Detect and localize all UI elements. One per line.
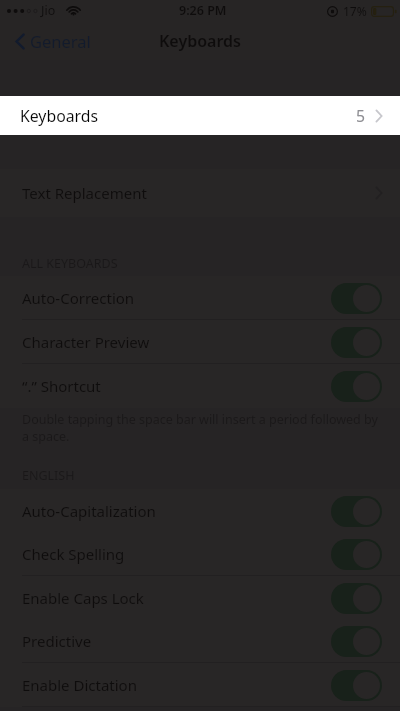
button[interactable]: Predictive <box>0 619 400 663</box>
staticText: Character Preview <box>22 332 150 352</box>
button[interactable]: Toggle <box>331 626 382 657</box>
button[interactable]: Auto-Correction <box>0 276 400 320</box>
button[interactable]: Toggle <box>331 670 382 701</box>
staticText: Auto-Capitalization <box>22 501 156 521</box>
staticText: Enable Caps Lock <box>22 588 144 608</box>
staticText: 17% <box>343 3 367 19</box>
staticText: “.” Shortcut <box>22 376 101 396</box>
staticText: General <box>30 30 91 52</box>
button[interactable]: General <box>13 25 93 57</box>
staticText: Auto-Correction <box>22 288 135 308</box>
button[interactable]: Character Preview <box>0 320 400 364</box>
button[interactable]: Enable Dictation <box>0 663 400 707</box>
staticText: ENGLISH <box>22 467 75 484</box>
staticText: 5 <box>356 105 366 127</box>
staticText: Enable Dictation <box>22 675 137 695</box>
button[interactable]: Toggle <box>331 371 382 402</box>
button[interactable]: Auto-Capitalization <box>0 489 400 533</box>
button[interactable]: Toggle <box>331 583 382 614</box>
button[interactable]: Toggle <box>331 283 382 314</box>
staticText: Predictive <box>22 631 92 651</box>
staticText: ALL KEYBOARDS <box>22 255 118 272</box>
button[interactable]: Check Spelling <box>0 532 400 576</box>
button[interactable]: Toggle <box>331 496 382 527</box>
staticText: Keyboards <box>159 30 241 52</box>
button[interactable]: Toggle <box>331 327 382 358</box>
button[interactable]: Keyboards <box>0 96 400 135</box>
button[interactable]: Toggle <box>331 539 382 570</box>
staticText: Text Replacement <box>22 183 147 203</box>
staticText: Jio <box>41 2 56 19</box>
staticText: Keyboards <box>20 105 99 127</box>
staticText: Check Spelling <box>22 544 125 564</box>
button[interactable]: “.” Shortcut <box>0 364 400 408</box>
button[interactable]: Enable Caps Lock <box>0 576 400 620</box>
staticText: 9:26 PM <box>179 2 227 19</box>
